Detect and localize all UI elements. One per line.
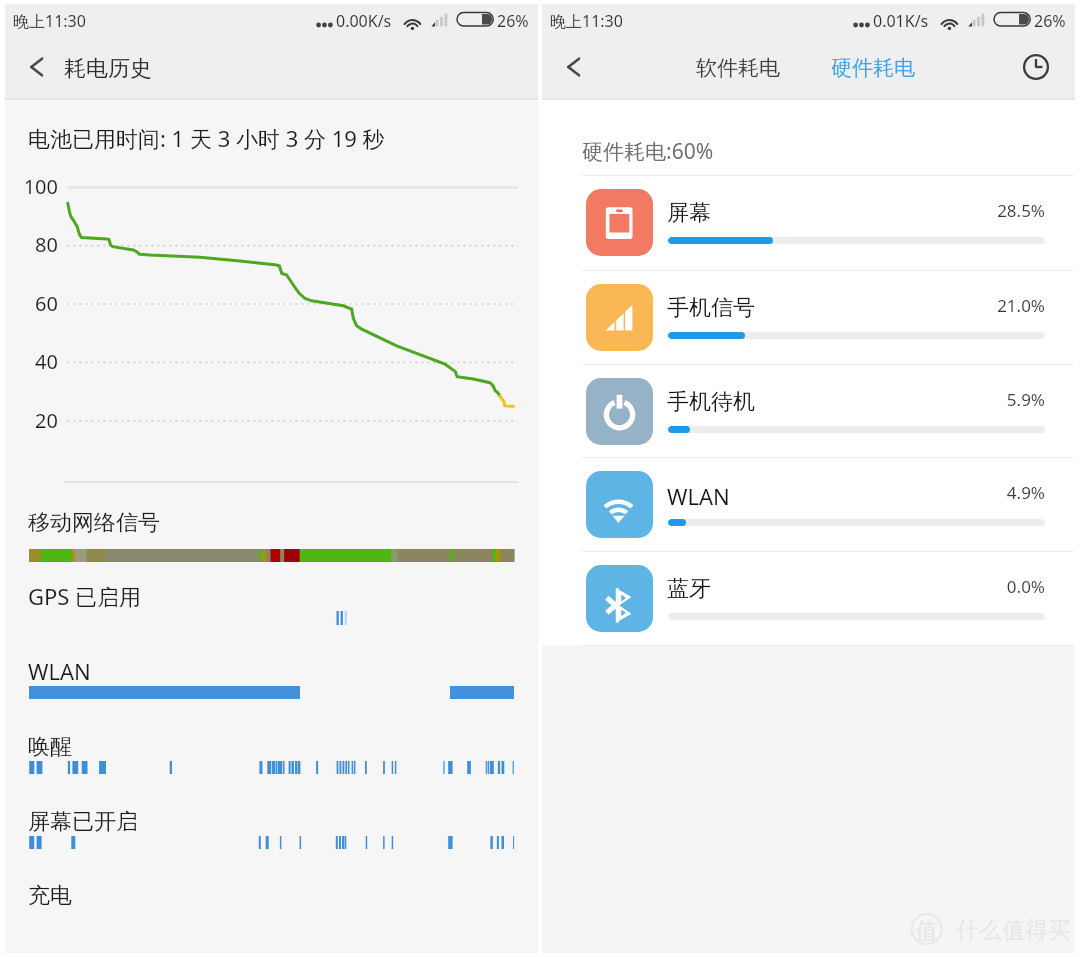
staticText: 4.9% [892, 481, 1045, 504]
staticText: WLAN [667, 481, 730, 511]
button[interactable]: 蓝牙 [542, 551, 1075, 644]
staticText: 充电 [28, 882, 72, 910]
staticText: 蓝牙 [667, 575, 711, 603]
staticText: 100 [5, 173, 58, 200]
staticText: 唤醒 [28, 733, 72, 761]
staticText: WLAN [28, 656, 91, 686]
staticText: 26% [497, 10, 529, 32]
staticText: 晚上11:30 [550, 10, 623, 32]
staticText: GPS 已启用 [28, 581, 142, 611]
staticText: 软件耗电 [696, 55, 780, 81]
staticText: 什么值得买 [956, 916, 1071, 945]
staticText: 值 [915, 917, 938, 946]
button[interactable]: 手机信号 [542, 270, 1075, 363]
staticText: 21.0% [892, 294, 1045, 317]
staticText: 0.0% [892, 575, 1045, 598]
staticText: 5.9% [892, 388, 1045, 411]
button[interactable] [5, 36, 538, 98]
staticText: 26% [1034, 10, 1066, 32]
staticText: 80 [5, 231, 58, 258]
staticText: 手机待机 [667, 388, 755, 416]
staticText: 28.5% [892, 199, 1045, 222]
staticText: 40 [5, 348, 58, 375]
staticText: 20 [5, 407, 58, 434]
button[interactable]: 屏幕 [542, 175, 1075, 268]
button[interactable]: History [1010, 41, 1062, 93]
button[interactable]: Back [549, 41, 601, 93]
button[interactable]: 软件耗电 [684, 46, 791, 90]
staticText: 硬件耗电 [831, 55, 915, 81]
staticText: 屏幕 [667, 199, 711, 227]
staticText: 60 [5, 290, 58, 317]
staticText: 移动网络信号 [28, 509, 160, 537]
button[interactable]: Back [12, 41, 64, 93]
button[interactable]: WLAN [542, 457, 1075, 550]
staticText: 0.01K/s [873, 10, 929, 32]
staticText: 耗电历史 [64, 55, 152, 83]
staticText: 电池已用时间: 1 天 3 小时 3 分 19 秒 [28, 123, 385, 153]
staticText: 手机信号 [667, 294, 755, 322]
staticText: 硬件耗电:60% [582, 137, 714, 166]
staticText: 晚上11:30 [13, 10, 86, 32]
staticText: 屏幕已开启 [28, 808, 138, 836]
button[interactable]: 硬件耗电 [819, 46, 926, 90]
button[interactable]: 手机待机 [542, 364, 1075, 457]
staticText: 0.00K/s [336, 10, 392, 32]
